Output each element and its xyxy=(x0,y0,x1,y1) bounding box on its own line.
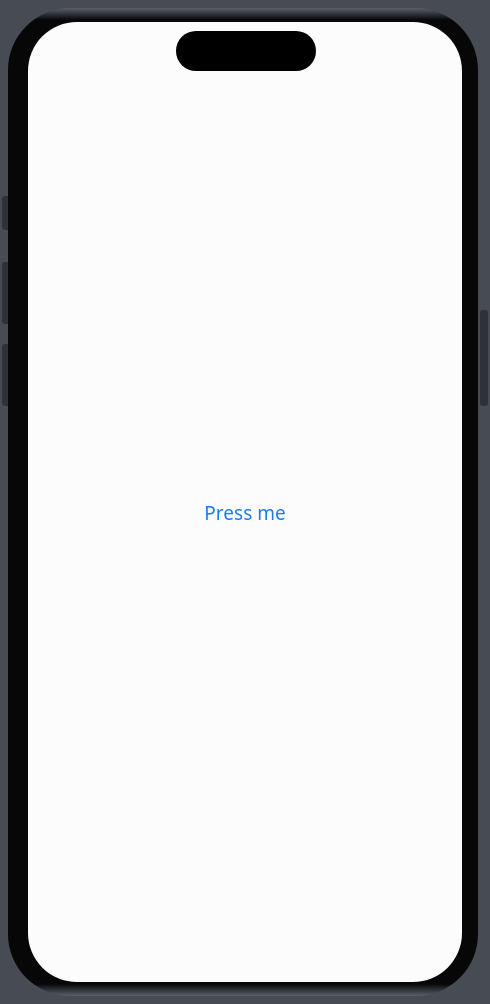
staticText: Press me xyxy=(204,500,286,526)
button[interactable]: Press me xyxy=(194,494,296,532)
